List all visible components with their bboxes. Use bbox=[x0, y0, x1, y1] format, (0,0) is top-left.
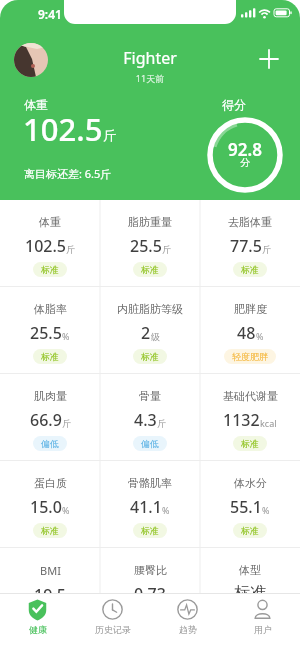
staticText: 蛋白质 bbox=[34, 476, 67, 490]
staticText: 2 bbox=[141, 322, 151, 344]
button[interactable]: 去脂体重 bbox=[200, 200, 300, 287]
staticText: 标准 bbox=[141, 351, 159, 362]
button[interactable]: 内脏脂肪等级 bbox=[100, 287, 200, 374]
staticText: % bbox=[162, 504, 170, 516]
staticText: 102.5 bbox=[25, 235, 66, 257]
button[interactable] bbox=[14, 43, 48, 77]
staticText: kcal bbox=[260, 417, 277, 429]
staticText: 25.5 bbox=[30, 322, 62, 344]
button[interactable]: 用户 bbox=[225, 594, 300, 650]
staticText: 19.5 bbox=[34, 584, 66, 606]
button[interactable]: 肌肉量 bbox=[0, 374, 100, 461]
staticText: % bbox=[62, 330, 70, 342]
staticText: 体重 bbox=[24, 97, 48, 112]
staticText: 11天前 bbox=[0, 72, 300, 84]
staticText: 102.5 bbox=[23, 108, 103, 150]
staticText: % bbox=[262, 504, 270, 516]
staticText: 标准 bbox=[241, 610, 259, 621]
staticText: 斤 bbox=[262, 244, 271, 255]
staticText: 斤 bbox=[162, 244, 171, 255]
staticText: 基础代谢量 bbox=[223, 389, 278, 403]
staticText: 标准 bbox=[141, 525, 159, 536]
button[interactable]: 体重 bbox=[0, 200, 100, 287]
staticText: 9:41 bbox=[38, 6, 62, 22]
staticText: 66.9 bbox=[30, 409, 62, 431]
staticText: 级 bbox=[151, 331, 160, 342]
staticText: 体水分 bbox=[234, 476, 267, 490]
staticText: 标准 bbox=[41, 613, 59, 624]
staticText: 标准 bbox=[41, 264, 59, 275]
staticText: 离目标还差: 6.5斤 bbox=[24, 166, 112, 181]
staticText: 15.0 bbox=[30, 496, 62, 518]
staticText: 55.1 bbox=[230, 496, 262, 518]
staticText: 斤 bbox=[62, 418, 71, 429]
button[interactable]: 体水分 bbox=[200, 461, 300, 548]
button[interactable]: 趋势 bbox=[150, 594, 225, 650]
staticText: 标准 bbox=[241, 438, 259, 449]
staticText: 斤 bbox=[66, 244, 75, 255]
staticText: 健康 bbox=[29, 624, 47, 635]
button[interactable]: 骨骼肌率 bbox=[100, 461, 200, 548]
staticText: 体重 bbox=[39, 215, 61, 229]
staticText: 体型 bbox=[239, 563, 261, 577]
button[interactable]: 健康 bbox=[0, 594, 75, 650]
staticText: 骨骼肌率 bbox=[128, 476, 172, 490]
staticText: 分 bbox=[210, 156, 280, 169]
staticText: 斤 bbox=[103, 127, 116, 143]
staticText: 0.73 bbox=[134, 583, 166, 605]
button[interactable]: 体脂率 bbox=[0, 287, 100, 374]
staticText: 偏低 bbox=[41, 438, 59, 449]
staticText: 标准 bbox=[141, 264, 159, 275]
staticText: 41.1 bbox=[130, 496, 162, 518]
staticText: BMI bbox=[40, 563, 61, 578]
button[interactable]: 骨量 bbox=[100, 374, 200, 461]
button[interactable]: 基础代谢量 bbox=[200, 374, 300, 461]
staticText: 历史记录 bbox=[95, 624, 131, 635]
staticText: 肥胖度 bbox=[234, 302, 267, 316]
staticText: 用户 bbox=[254, 624, 272, 635]
staticText: 体脂率 bbox=[34, 302, 67, 316]
staticText: Fighter bbox=[0, 47, 300, 69]
staticText: 4.3 bbox=[134, 409, 157, 431]
staticText: 77.5 bbox=[230, 235, 262, 257]
button[interactable]: 体型 bbox=[200, 548, 300, 635]
staticText: 斤 bbox=[157, 418, 166, 429]
staticText: 脂肪重量 bbox=[128, 215, 172, 229]
button[interactable] bbox=[256, 46, 282, 72]
staticText: 趋势 bbox=[179, 624, 197, 635]
staticText: 25.5 bbox=[130, 235, 162, 257]
button[interactable]: 腰臀比 bbox=[100, 548, 200, 635]
staticText: 48 bbox=[237, 322, 256, 344]
staticText: % bbox=[62, 504, 70, 516]
staticText: 1132 bbox=[223, 409, 260, 431]
staticText: 标准 bbox=[234, 583, 266, 603]
button[interactable]: 脂肪重量 bbox=[100, 200, 200, 287]
staticText: 内脏脂肪等级 bbox=[117, 302, 183, 316]
staticText: 92.8 bbox=[210, 138, 280, 161]
staticText: 标准 bbox=[41, 525, 59, 536]
staticText: % bbox=[256, 330, 264, 342]
staticText: 标准 bbox=[41, 351, 59, 362]
button[interactable]: 肥胖度 bbox=[200, 287, 300, 374]
staticText: 去脂体重 bbox=[228, 215, 272, 229]
staticText: 肌肉量 bbox=[34, 389, 67, 403]
staticText: 标准 bbox=[241, 264, 259, 275]
button[interactable]: 蛋白质 bbox=[0, 461, 100, 548]
staticText: 标准 bbox=[241, 525, 259, 536]
button[interactable]: 历史记录 bbox=[75, 594, 150, 650]
staticText: 偏低 bbox=[141, 438, 159, 449]
staticText: 得分 bbox=[222, 97, 246, 112]
staticText: 骨量 bbox=[139, 389, 161, 403]
staticText: 轻度肥胖 bbox=[232, 351, 268, 362]
button[interactable]: BMI bbox=[0, 548, 100, 635]
staticText: 腰臀比 bbox=[134, 563, 167, 577]
